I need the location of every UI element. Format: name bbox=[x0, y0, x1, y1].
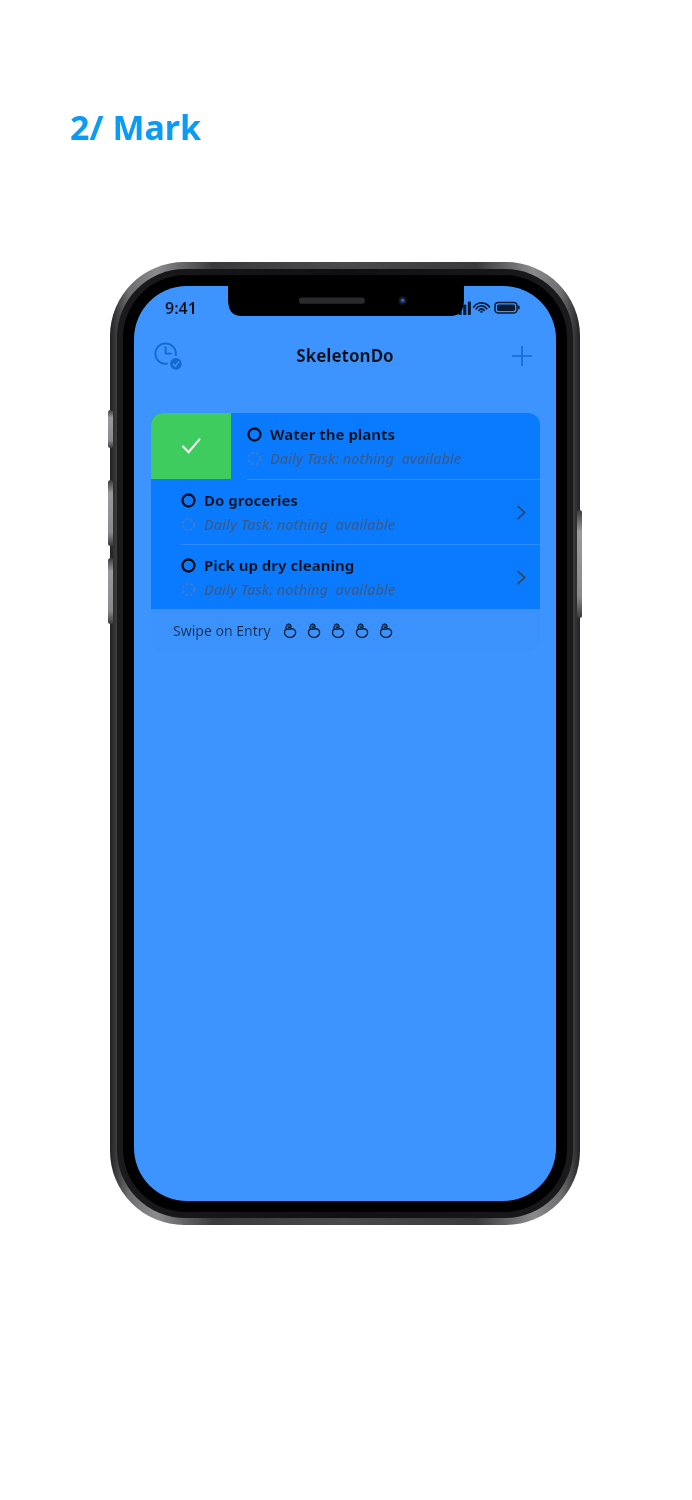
button[interactable]: Pick up dry cleaning bbox=[151, 545, 540, 609]
button[interactable]: Mark complete bbox=[151, 413, 540, 479]
staticText: Daily Task: nothing available bbox=[204, 514, 396, 534]
staticText: Swipe on Entry bbox=[173, 621, 271, 640]
staticText: Daily Task: nothing available bbox=[204, 579, 396, 599]
staticText: Water the plants bbox=[270, 424, 396, 444]
button[interactable]: Mark complete bbox=[151, 413, 231, 479]
staticText: SkeletonDo bbox=[134, 344, 556, 367]
staticText: Daily Task: nothing available bbox=[270, 448, 462, 468]
staticText: 2/ Mark bbox=[70, 104, 202, 150]
staticText: Do groceries bbox=[204, 490, 298, 510]
button[interactable]: Add task bbox=[504, 339, 540, 373]
staticText: 9:41 bbox=[165, 297, 197, 319]
button[interactable]: Scheduled tasks bbox=[151, 339, 185, 373]
button[interactable]: Swipe on Entry bbox=[151, 609, 540, 651]
staticText: Pick up dry cleaning bbox=[204, 555, 355, 575]
button[interactable]: Do groceries bbox=[151, 480, 540, 544]
